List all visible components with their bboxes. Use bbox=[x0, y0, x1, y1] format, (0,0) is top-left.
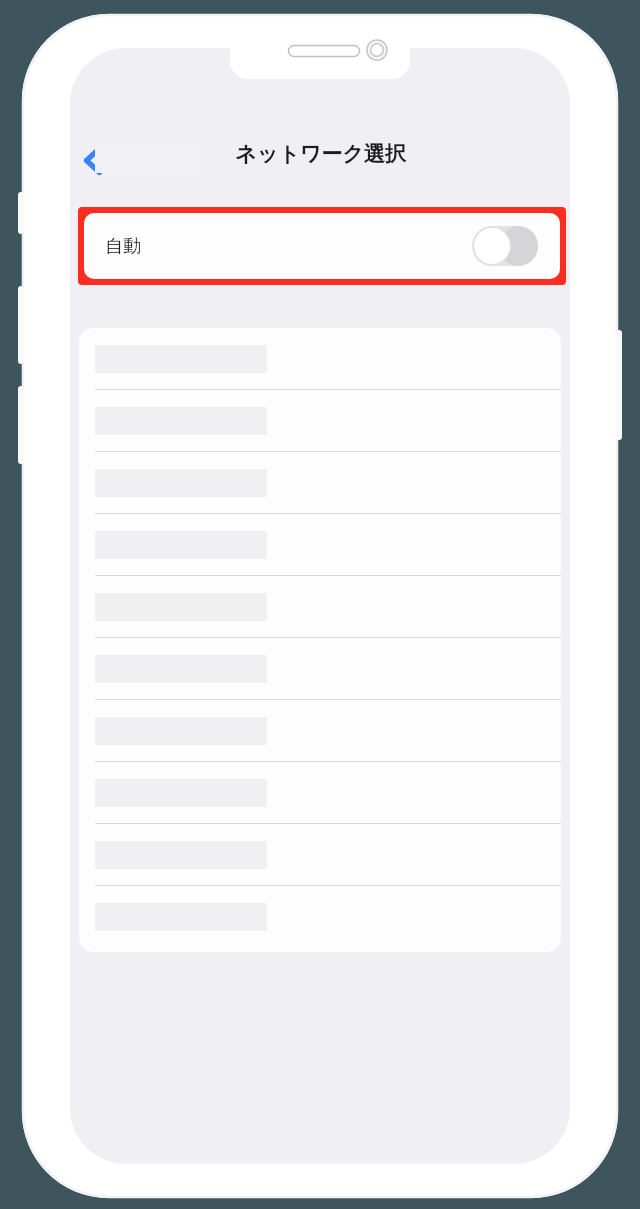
button[interactable] bbox=[79, 390, 561, 452]
button[interactable]: 自動切り替え bbox=[472, 226, 538, 266]
button[interactable] bbox=[79, 452, 561, 514]
button[interactable]: 自動 bbox=[84, 213, 560, 279]
staticText: ネットワーク選択 bbox=[235, 141, 406, 167]
button[interactable] bbox=[79, 328, 561, 390]
button[interactable] bbox=[79, 514, 561, 576]
button[interactable] bbox=[79, 762, 561, 824]
button[interactable] bbox=[79, 638, 561, 700]
button[interactable]: 戻る bbox=[70, 134, 116, 186]
button[interactable] bbox=[79, 824, 561, 886]
button[interactable] bbox=[79, 886, 561, 948]
button[interactable] bbox=[79, 700, 561, 762]
button[interactable] bbox=[79, 576, 561, 638]
staticText: 自動 bbox=[105, 235, 141, 258]
